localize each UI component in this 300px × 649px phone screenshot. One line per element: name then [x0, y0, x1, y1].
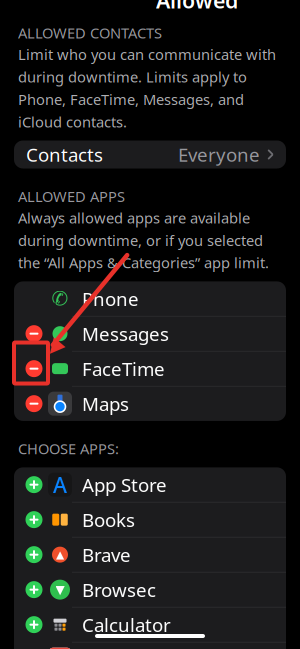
staticText: Books [82, 507, 135, 532]
staticText: ◀ [45, 336, 60, 358]
staticText: Everyone [178, 142, 260, 167]
button[interactable]: Calendar [14, 642, 286, 649]
staticText: ✆ [51, 287, 68, 310]
staticText: CHOOSE APPS: [18, 439, 119, 458]
staticText: Messages [82, 321, 169, 346]
staticText: Browsec [82, 577, 156, 602]
button[interactable]: Contacts [14, 140, 286, 168]
staticText: Phone [82, 286, 139, 311]
staticText: A [53, 470, 67, 499]
button[interactable]: FaceTime [14, 351, 286, 386]
staticText: Maps [82, 391, 129, 416]
staticText: Contacts [26, 142, 103, 167]
button[interactable]: Calculator [14, 607, 286, 642]
staticText: ALLOWED APPS [18, 186, 125, 206]
staticText: FaceTime [82, 356, 165, 381]
button[interactable]: Messages [14, 316, 286, 351]
button[interactable]: A [14, 467, 286, 502]
button[interactable]: Books [14, 502, 286, 537]
button[interactable]: Maps [14, 386, 286, 421]
staticText: ▲ [56, 549, 64, 561]
staticText: Brave [82, 542, 131, 567]
button[interactable]: ✆ [14, 281, 286, 316]
staticText: ALLOWED CONTACTS [18, 23, 162, 43]
staticText: Limit who you can communicate with durin… [18, 45, 276, 131]
staticText: ▼ [55, 583, 64, 596]
staticText: Always allowed apps are available during… [18, 208, 269, 272]
button[interactable]: ▼ [14, 572, 286, 607]
staticText: Calculator [82, 612, 171, 637]
staticText: Always Allowed [156, 0, 238, 14]
staticText: App Store [82, 472, 167, 497]
button[interactable]: ▲ [14, 537, 286, 572]
